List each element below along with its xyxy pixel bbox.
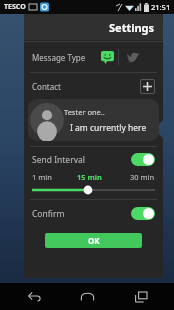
staticText: Send Interval bbox=[32, 154, 85, 166]
button[interactable]: Recent apps bbox=[121, 283, 161, 310]
staticText: Tester one.. bbox=[64, 107, 105, 117]
staticText: I am currently here bbox=[70, 122, 147, 134]
staticText: Message Type bbox=[32, 52, 86, 63]
button[interactable]: Tester one.. bbox=[28, 99, 159, 141]
staticText: Contact bbox=[32, 81, 61, 92]
button[interactable]: Add contact bbox=[140, 79, 155, 94]
button[interactable]: Home bbox=[67, 283, 107, 310]
staticText: 30 min bbox=[130, 172, 155, 182]
staticText: TESCO bbox=[4, 2, 26, 12]
staticText: Confirm bbox=[32, 208, 65, 220]
button[interactable]: OK bbox=[45, 233, 142, 248]
staticText: OK bbox=[88, 235, 100, 246]
button[interactable]: Twitter message type bbox=[119, 47, 147, 67]
button[interactable]: Send interval slider bbox=[32, 184, 155, 196]
staticText: 1 min bbox=[32, 172, 52, 182]
button[interactable]: Send Interval bbox=[32, 147, 155, 172]
staticText: Settings bbox=[109, 20, 155, 35]
button[interactable]: SMS message type bbox=[96, 47, 118, 67]
button[interactable]: Toggle bbox=[131, 207, 155, 220]
button[interactable]: Confirm bbox=[32, 200, 155, 227]
staticText: 21:51 bbox=[151, 2, 171, 12]
button[interactable]: Back bbox=[14, 283, 54, 310]
button[interactable]: Toggle bbox=[131, 153, 155, 166]
staticText: 15 min bbox=[77, 172, 102, 182]
